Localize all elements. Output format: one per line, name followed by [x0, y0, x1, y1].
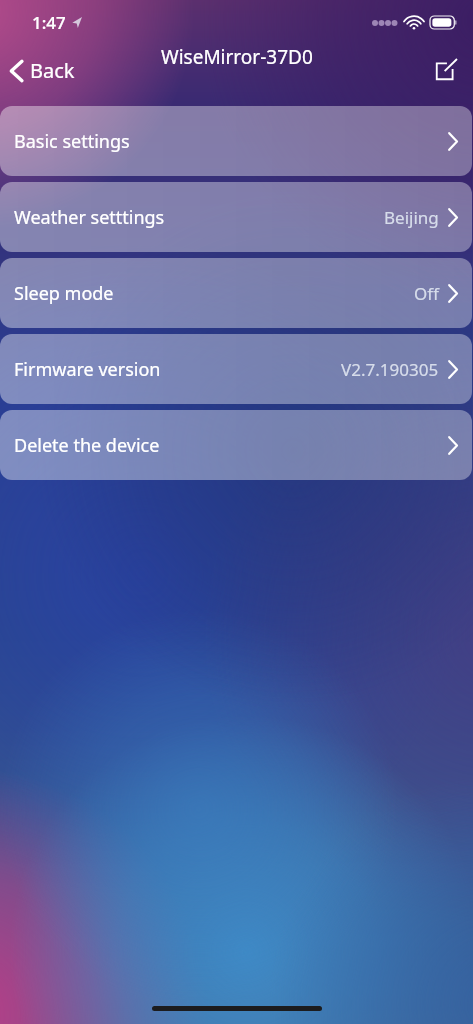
staticText: V2.7.190305 [341, 358, 439, 381]
button[interactable]: Weather setttings [0, 182, 472, 252]
button[interactable]: Basic settings [0, 106, 472, 176]
staticText: Off [414, 282, 439, 305]
staticText: Back [30, 57, 75, 84]
staticText: Firmware version [14, 357, 161, 382]
button[interactable]: Sleep mode [0, 258, 472, 328]
staticText: 1:47 [32, 11, 66, 34]
staticText: Delete the device [14, 433, 160, 458]
button[interactable]: Firmware version [0, 334, 472, 404]
staticText: Weather setttings [14, 205, 165, 230]
staticText: Beijing [384, 206, 439, 229]
staticText: Sleep mode [14, 281, 114, 306]
button[interactable]: Back [0, 53, 85, 88]
button[interactable]: Delete the device [0, 410, 472, 480]
staticText: WiseMirror-37D0 [161, 44, 313, 70]
button[interactable]: Edit [429, 53, 463, 87]
staticText: Basic settings [14, 129, 130, 154]
